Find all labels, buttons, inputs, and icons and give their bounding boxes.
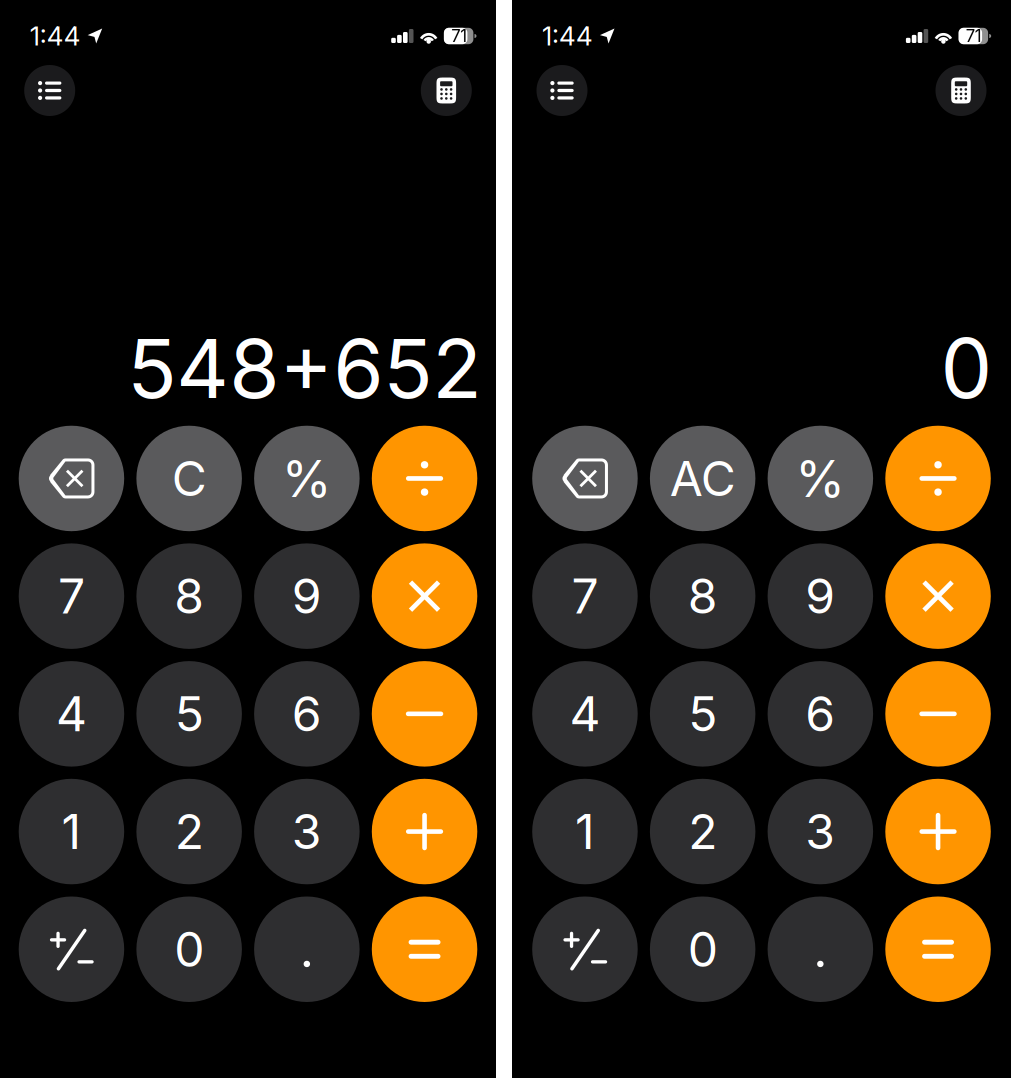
button[interactable]: 6 xyxy=(768,661,873,767)
staticText: C xyxy=(172,449,207,507)
staticText: 9 xyxy=(292,567,322,625)
button[interactable]: History xyxy=(536,65,587,116)
staticText: 1:44 xyxy=(30,20,81,52)
staticText: 0 xyxy=(174,920,204,978)
staticText: 5 xyxy=(175,685,204,743)
button[interactable]: 9 xyxy=(768,543,873,649)
staticText: 4 xyxy=(56,685,87,743)
button[interactable]: 2 xyxy=(136,779,242,884)
button[interactable]: Divide xyxy=(885,426,991,531)
staticText: 8 xyxy=(174,567,204,625)
button[interactable]: 8 xyxy=(136,543,242,649)
button[interactable]: % xyxy=(254,426,360,531)
button[interactable]: 5 xyxy=(650,661,755,767)
staticText: 0 xyxy=(688,920,718,978)
button[interactable]: Multiply xyxy=(372,543,477,649)
staticText: 6 xyxy=(292,685,322,743)
button[interactable]: Divide xyxy=(372,426,477,531)
staticText: 6 xyxy=(805,685,835,743)
button[interactable]: 4 xyxy=(19,661,124,767)
staticText: % xyxy=(282,448,332,509)
staticText: 3 xyxy=(292,802,322,861)
staticText: 1 xyxy=(575,802,595,861)
button[interactable]: C xyxy=(136,426,242,531)
staticText: 1 xyxy=(61,802,81,861)
button[interactable]: Minus xyxy=(885,661,991,767)
button[interactable]: Decimal point xyxy=(768,896,873,1002)
button[interactable]: 0 xyxy=(650,896,755,1002)
button[interactable]: AC xyxy=(650,426,755,531)
staticText: 548+652 xyxy=(127,319,482,418)
button[interactable]: Calculator xyxy=(421,65,472,116)
button[interactable]: 7 xyxy=(532,543,638,649)
button[interactable]: Delete xyxy=(19,426,124,531)
staticText: 2 xyxy=(688,802,717,861)
staticText: AC xyxy=(670,449,736,507)
staticText: 9 xyxy=(805,567,835,625)
button[interactable]: Equals xyxy=(885,896,991,1002)
button[interactable]: Plus Minus xyxy=(19,896,124,1002)
button[interactable]: 4 xyxy=(532,661,638,767)
button[interactable]: 3 xyxy=(768,779,873,884)
staticText: 5 xyxy=(688,685,717,743)
button[interactable]: 9 xyxy=(254,543,360,649)
button[interactable]: 1 xyxy=(19,779,124,884)
button[interactable]: 6 xyxy=(254,661,360,767)
button[interactable]: 7 xyxy=(19,543,124,649)
staticText: 0 xyxy=(940,318,992,418)
staticText: 71 xyxy=(451,26,467,46)
button[interactable]: Plus Minus xyxy=(532,896,638,1002)
staticText: 1:44 xyxy=(542,20,593,52)
button[interactable]: Decimal point xyxy=(254,896,360,1002)
button[interactable]: 0 xyxy=(136,896,242,1002)
staticText: % xyxy=(795,448,845,509)
button[interactable]: History xyxy=(24,65,75,116)
button[interactable]: Equals xyxy=(372,896,477,1002)
staticText: 71 xyxy=(966,26,982,46)
staticText: 7 xyxy=(571,567,598,625)
button[interactable]: 1 xyxy=(532,779,638,884)
staticText: 3 xyxy=(805,802,835,861)
button[interactable]: Delete xyxy=(532,426,638,531)
button[interactable]: 2 xyxy=(650,779,755,884)
staticText: 2 xyxy=(175,802,204,861)
button[interactable]: Calculator xyxy=(935,65,986,116)
button[interactable]: Plus xyxy=(372,779,477,884)
staticText: 4 xyxy=(569,685,600,743)
button[interactable]: Multiply xyxy=(885,543,991,649)
button[interactable]: Minus xyxy=(372,661,477,767)
button[interactable]: % xyxy=(768,426,873,531)
button[interactable]: 5 xyxy=(136,661,242,767)
button[interactable]: 3 xyxy=(254,779,360,884)
button[interactable]: 8 xyxy=(650,543,755,649)
staticText: 8 xyxy=(688,567,718,625)
button[interactable]: Plus xyxy=(885,779,991,884)
staticText: 7 xyxy=(58,567,85,625)
